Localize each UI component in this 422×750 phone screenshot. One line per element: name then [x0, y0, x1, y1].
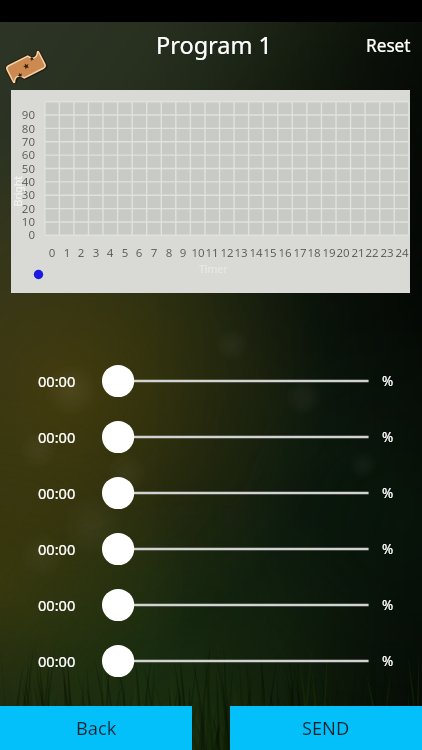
staticText: 90 [15, 107, 35, 123]
staticText: 24 [392, 245, 412, 261]
staticText: 40 [15, 174, 35, 190]
staticText: 00:00 [38, 595, 76, 615]
staticText: Program 1 [156, 29, 273, 61]
staticText: 0 [42, 245, 62, 261]
staticText: 6 [129, 245, 149, 261]
staticText: 00:00 [38, 427, 76, 447]
staticText: 20 [15, 201, 35, 217]
staticText: SEND [302, 716, 350, 741]
staticText: % [382, 428, 394, 446]
button[interactable]: 00:00 [0, 577, 422, 633]
staticText: 17 [290, 245, 310, 261]
staticText: Timer [199, 262, 228, 276]
staticText: 23 [377, 245, 397, 261]
staticText: 15 [260, 245, 280, 261]
staticText: 2 [71, 245, 91, 261]
staticText: % [382, 372, 394, 390]
button[interactable]: 00:00 [0, 353, 422, 409]
staticText: 13 [231, 245, 251, 261]
staticText: 5 [115, 245, 135, 261]
button[interactable]: Back [0, 706, 192, 750]
button[interactable]: 00:00 [0, 633, 422, 689]
staticText: 7 [144, 245, 164, 261]
staticText: 0 [15, 227, 35, 243]
staticText: % [382, 652, 394, 670]
staticText: % [382, 596, 394, 614]
staticText: Back [76, 716, 117, 741]
button[interactable]: SEND [230, 706, 422, 750]
button[interactable]: Treat [5, 49, 47, 85]
staticText: 18 [304, 245, 324, 261]
staticText: 22 [362, 245, 382, 261]
staticText: 9 [173, 245, 193, 261]
staticText: 11 [202, 245, 222, 261]
staticText: 60 [15, 147, 35, 163]
staticText: 00:00 [38, 371, 76, 391]
staticText: 20 [333, 245, 353, 261]
staticText: 8 [159, 245, 179, 261]
staticText: 00:00 [38, 539, 76, 559]
staticText: 00:00 [38, 483, 76, 503]
staticText: % [382, 540, 394, 558]
staticText: 10 [15, 214, 35, 230]
staticText: 10 [188, 245, 208, 261]
staticText: 14 [246, 245, 266, 261]
staticText: Bright [10, 175, 24, 206]
staticText: 19 [319, 245, 339, 261]
staticText: 12 [217, 245, 237, 261]
staticText: % [382, 484, 394, 502]
staticText: 80 [15, 121, 35, 137]
staticText: 70 [15, 134, 35, 150]
staticText: 50 [15, 161, 35, 177]
staticText: 21 [348, 245, 368, 261]
staticText: 30 [15, 187, 35, 203]
button[interactable]: 00:00 [0, 521, 422, 577]
button[interactable]: 00:00 [0, 409, 422, 465]
button[interactable]: 00:00 [0, 465, 422, 521]
staticText: 3 [86, 245, 106, 261]
staticText: 00:00 [38, 651, 76, 671]
staticText: 1 [57, 245, 77, 261]
staticText: 16 [275, 245, 295, 261]
staticText: 4 [100, 245, 120, 261]
button[interactable]: Reset [366, 34, 411, 57]
